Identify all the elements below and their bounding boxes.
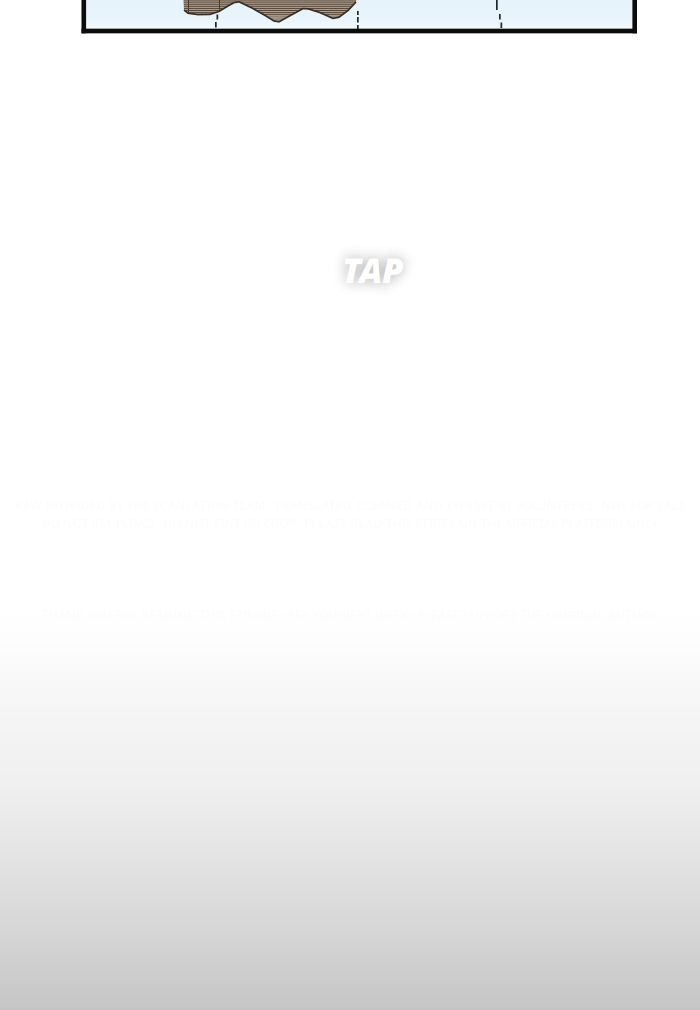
staticText: TAP [342,247,404,293]
button[interactable]: Tap to continue reading [0,0,700,1010]
